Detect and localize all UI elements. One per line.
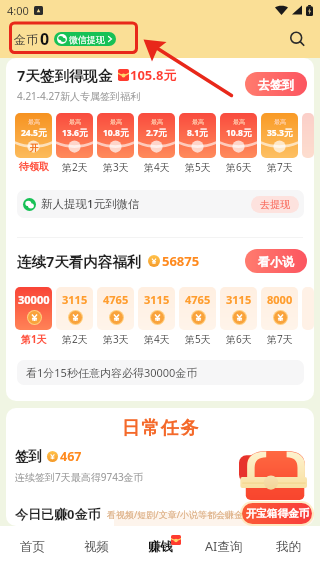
- staticText: 日常任务: [121, 417, 199, 440]
- button[interactable]: 去签到: [245, 72, 307, 96]
- staticText: 第7天: [267, 160, 293, 174]
- staticText: 第3天: [103, 332, 129, 346]
- staticText: 8000: [267, 292, 293, 307]
- staticText: 8.1元: [187, 127, 208, 139]
- staticText: AI查询: [205, 538, 243, 555]
- staticText: 第2天: [62, 332, 88, 346]
- staticText: 金币: [14, 32, 38, 47]
- staticText: 最高: [192, 118, 204, 126]
- staticText: 第3天: [103, 160, 129, 174]
- button[interactable]: 8000: [261, 287, 298, 346]
- button[interactable]: AI查询: [192, 526, 256, 569]
- staticText: 3115: [144, 292, 170, 307]
- button[interactable]: 3115: [56, 287, 93, 346]
- staticText: 连续7天看内容福利: [17, 251, 142, 271]
- button[interactable]: 新人提现1元到微信: [17, 190, 304, 218]
- staticText: 第6天: [226, 160, 252, 174]
- staticText: 去提现: [260, 198, 290, 211]
- staticText: 4:00: [7, 3, 29, 18]
- button[interactable]: 3115: [220, 287, 257, 346]
- staticText: 连续签到7天最高得9743金币: [15, 470, 144, 484]
- staticText: 24.5元: [21, 127, 47, 139]
- button[interactable]: 4765: [97, 287, 134, 346]
- button[interactable]: 我的: [256, 526, 320, 569]
- staticText: 3115: [62, 292, 88, 307]
- staticText: 开宝箱得金币: [246, 507, 309, 520]
- staticText: 第5天: [185, 332, 211, 346]
- staticText: 今日已赚0金币: [15, 505, 101, 523]
- staticText: 7天签到得现金: [17, 65, 113, 85]
- staticText: 10.8元: [103, 127, 129, 139]
- button[interactable]: 今日已赚0金币: [15, 505, 253, 523]
- staticText: 微信提现: [69, 34, 105, 45]
- staticText: 第7天: [267, 332, 293, 346]
- button[interactable]: 看1分15秒任意内容必得30000金币: [17, 360, 304, 385]
- button[interactable]: 最高: [138, 113, 175, 174]
- staticText: 第1天: [21, 332, 47, 346]
- staticText: 第5天: [185, 160, 211, 174]
- button[interactable]: 3115: [138, 287, 175, 346]
- staticText: 35.3元: [267, 127, 293, 139]
- button[interactable]: 首页: [0, 526, 64, 569]
- staticText: 最高: [151, 118, 163, 126]
- staticText: 最高: [28, 118, 40, 126]
- staticText: 看1分15秒任意内容必得30000金币: [26, 365, 198, 380]
- staticText: 首页: [20, 539, 45, 555]
- button[interactable]: 视频: [64, 526, 128, 569]
- staticText: 去签到: [258, 77, 294, 92]
- staticText: 待领取: [19, 160, 49, 173]
- staticText: 最高: [110, 118, 122, 126]
- button[interactable]: 看小说: [245, 249, 307, 273]
- staticText: 467: [60, 448, 82, 465]
- staticText: 10.8元: [226, 127, 252, 139]
- staticText: 我的: [276, 539, 301, 555]
- button[interactable]: 最高: [97, 113, 134, 174]
- button[interactable]: 最高: [179, 113, 216, 174]
- staticText: 13.6元: [62, 127, 88, 139]
- staticText: 签到: [15, 448, 42, 465]
- staticText: 105.8元: [130, 66, 177, 84]
- staticText: 4.21-4.27新人专属签到福利: [17, 89, 140, 103]
- staticText: 开: [30, 143, 39, 154]
- button[interactable]: 最高: [15, 113, 52, 173]
- staticText: 4765: [103, 292, 129, 307]
- button[interactable]: 4765: [179, 287, 216, 346]
- staticText: 最高: [233, 118, 245, 126]
- button[interactable]: 去提现: [251, 196, 299, 213]
- staticText: 最高: [69, 118, 81, 126]
- staticText: 视频: [84, 539, 109, 555]
- button[interactable]: 开宝箱得金币: [242, 503, 312, 524]
- button[interactable]: 最高: [56, 113, 93, 174]
- staticText: 2.7元: [146, 127, 167, 139]
- staticText: 新人提现1元到微信: [41, 196, 140, 212]
- button[interactable]: 最高: [220, 113, 257, 174]
- button[interactable]: Search: [282, 24, 312, 54]
- staticText: 3115: [226, 292, 252, 307]
- button[interactable]: 微信提现: [54, 32, 116, 46]
- button[interactable]: 30000: [15, 287, 52, 346]
- staticText: 4765: [185, 292, 211, 307]
- staticText: 第6天: [226, 332, 252, 346]
- staticText: 30000: [18, 292, 50, 307]
- staticText: 赚钱: [148, 539, 173, 555]
- button[interactable]: 赚钱: [128, 526, 192, 569]
- staticText: 看视频/短剧/文章/小说等都会赚金币: [107, 508, 253, 520]
- button[interactable]: 最高: [261, 113, 298, 174]
- staticText: 0: [40, 28, 50, 50]
- staticText: 最高: [274, 118, 286, 126]
- staticText: 第4天: [144, 160, 170, 174]
- staticText: 56875: [162, 252, 200, 270]
- staticText: 第4天: [144, 332, 170, 346]
- staticText: 看小说: [258, 254, 294, 269]
- staticText: 第2天: [62, 160, 88, 174]
